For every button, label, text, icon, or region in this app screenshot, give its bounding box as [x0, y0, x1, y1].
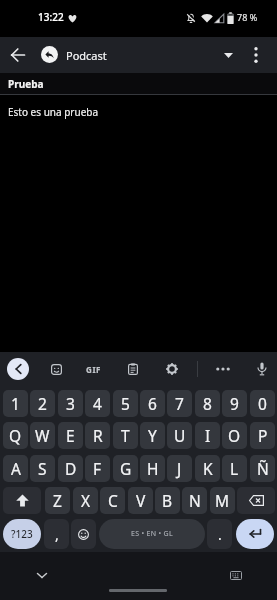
button[interactable]: Ñ	[250, 455, 275, 482]
button[interactable]: L	[222, 455, 247, 482]
button[interactable]: O	[222, 422, 247, 449]
button[interactable]	[244, 43, 268, 67]
staticText: D	[65, 458, 77, 479]
button[interactable]: 0	[250, 390, 275, 417]
button[interactable]: Prueba	[0, 73, 277, 94]
button[interactable]: F	[85, 455, 110, 482]
staticText: 0	[258, 393, 267, 414]
button[interactable]	[71, 519, 96, 549]
button[interactable]: ,	[44, 519, 69, 549]
button[interactable]: M	[210, 487, 235, 514]
staticText: 6	[148, 393, 157, 414]
staticText: ES • EN • GL	[131, 529, 173, 539]
staticText: C	[108, 490, 118, 511]
button[interactable]: B	[155, 487, 180, 514]
staticText: 3	[66, 393, 75, 414]
button[interactable]	[250, 357, 274, 381]
button[interactable]: S	[30, 455, 55, 482]
button[interactable]: 9	[222, 390, 247, 417]
button[interactable]: 6	[140, 390, 165, 417]
staticText: O	[228, 425, 241, 446]
staticText: F	[93, 458, 102, 479]
button[interactable]	[216, 43, 240, 67]
staticText: GIF	[86, 364, 102, 375]
staticText: 7	[175, 393, 184, 414]
staticText: W	[35, 425, 50, 446]
button[interactable]	[2, 39, 34, 71]
button[interactable]	[160, 357, 184, 381]
button[interactable]: C	[100, 487, 125, 514]
button[interactable]: A	[3, 455, 28, 482]
button[interactable]: W	[30, 422, 55, 449]
staticText: 1	[11, 393, 20, 414]
button[interactable]	[224, 563, 248, 587]
staticText: P	[258, 425, 268, 446]
staticText: Z	[53, 490, 62, 511]
button[interactable]: 7	[167, 390, 192, 417]
button[interactable]: 8	[195, 390, 220, 417]
button[interactable]	[237, 487, 275, 514]
staticText: Ñ	[257, 458, 269, 479]
button[interactable]	[30, 563, 54, 587]
button[interactable]: Q	[3, 422, 28, 449]
staticText: L	[230, 458, 239, 479]
staticText: 8	[203, 393, 212, 414]
staticText: B	[162, 490, 173, 511]
staticText: ?123	[11, 527, 33, 541]
staticText: S	[38, 458, 47, 479]
button[interactable]	[121, 357, 145, 381]
staticText: ,	[55, 525, 59, 544]
button[interactable]: H	[140, 455, 165, 482]
staticText: .	[218, 525, 222, 544]
button[interactable]: ES • EN • GL	[99, 519, 205, 549]
staticText: Q	[9, 425, 22, 446]
staticText: Prueba	[8, 77, 44, 91]
staticText: 78 %	[237, 11, 258, 23]
button[interactable]	[44, 357, 68, 381]
button[interactable]: D	[58, 455, 83, 482]
button[interactable]: K	[195, 455, 220, 482]
button[interactable]: GIF	[82, 357, 106, 381]
button[interactable]	[7, 358, 29, 380]
button[interactable]: ?123	[3, 519, 41, 549]
button[interactable]: 3	[58, 390, 83, 417]
staticText: T	[121, 425, 130, 446]
button[interactable]: V	[128, 487, 153, 514]
staticText: X	[81, 490, 91, 511]
button[interactable]: N	[182, 487, 207, 514]
button[interactable]: X	[73, 487, 98, 514]
staticText: Esto es una prueba	[8, 105, 99, 119]
staticText: 4	[93, 393, 102, 414]
staticText: V	[136, 490, 146, 511]
staticText: I	[205, 425, 211, 446]
button[interactable]: U	[167, 422, 192, 449]
button[interactable]: 5	[113, 390, 138, 417]
button[interactable]: 2	[30, 390, 55, 417]
staticText: 2	[38, 393, 47, 414]
button[interactable]: 1	[3, 390, 28, 417]
button[interactable]: E	[58, 422, 83, 449]
button[interactable]: 4	[85, 390, 110, 417]
button[interactable]: .	[207, 519, 232, 549]
staticText: 9	[230, 393, 239, 414]
staticText: J	[177, 458, 182, 479]
button[interactable]	[3, 487, 41, 514]
staticText: M	[215, 490, 230, 511]
staticText: Podcast	[66, 48, 107, 63]
button[interactable]: P	[250, 422, 275, 449]
staticText: 5	[121, 393, 130, 414]
button[interactable]: T	[113, 422, 138, 449]
staticText: E	[66, 425, 75, 446]
staticText: R	[93, 425, 103, 446]
button[interactable]: Y	[140, 422, 165, 449]
staticText: G	[120, 458, 132, 479]
button[interactable]	[236, 519, 274, 549]
staticText: A	[11, 458, 21, 479]
button[interactable]: R	[85, 422, 110, 449]
button[interactable]: J	[167, 455, 192, 482]
button[interactable]	[211, 357, 235, 381]
staticText: 13:22	[38, 10, 64, 24]
button[interactable]: G	[113, 455, 138, 482]
button[interactable]: Z	[45, 487, 70, 514]
button[interactable]: I	[195, 422, 220, 449]
